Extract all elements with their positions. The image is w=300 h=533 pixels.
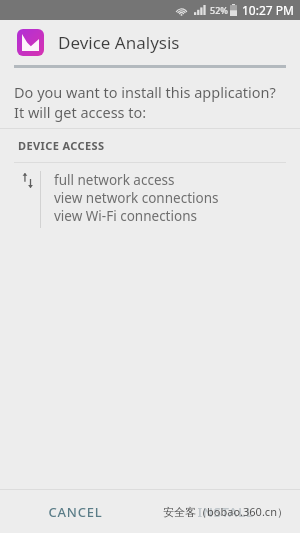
- staticText: CANCEL: [48, 503, 103, 521]
- button[interactable]: CANCEL: [0, 490, 150, 533]
- button[interactable]: INSTALL: [150, 490, 300, 533]
- staticText: 52%: [210, 4, 228, 16]
- staticText: 10:27 PM: [242, 2, 294, 18]
- staticText: view Wi-Fi connections: [54, 207, 197, 225]
- button[interactable]: Network access: [14, 171, 286, 228]
- staticText: DEVICE ACCESS: [18, 138, 300, 153]
- staticText: Device Analysis: [58, 31, 180, 54]
- staticText: full network access: [54, 171, 175, 189]
- staticText: INSTALL: [197, 503, 254, 521]
- staticText: view network connections: [54, 189, 219, 207]
- other: Network access: [20, 173, 35, 188]
- staticText: 安全客（bobao.360.cn）: [163, 504, 288, 519]
- staticText: Do you want to install this application?…: [14, 82, 286, 123]
